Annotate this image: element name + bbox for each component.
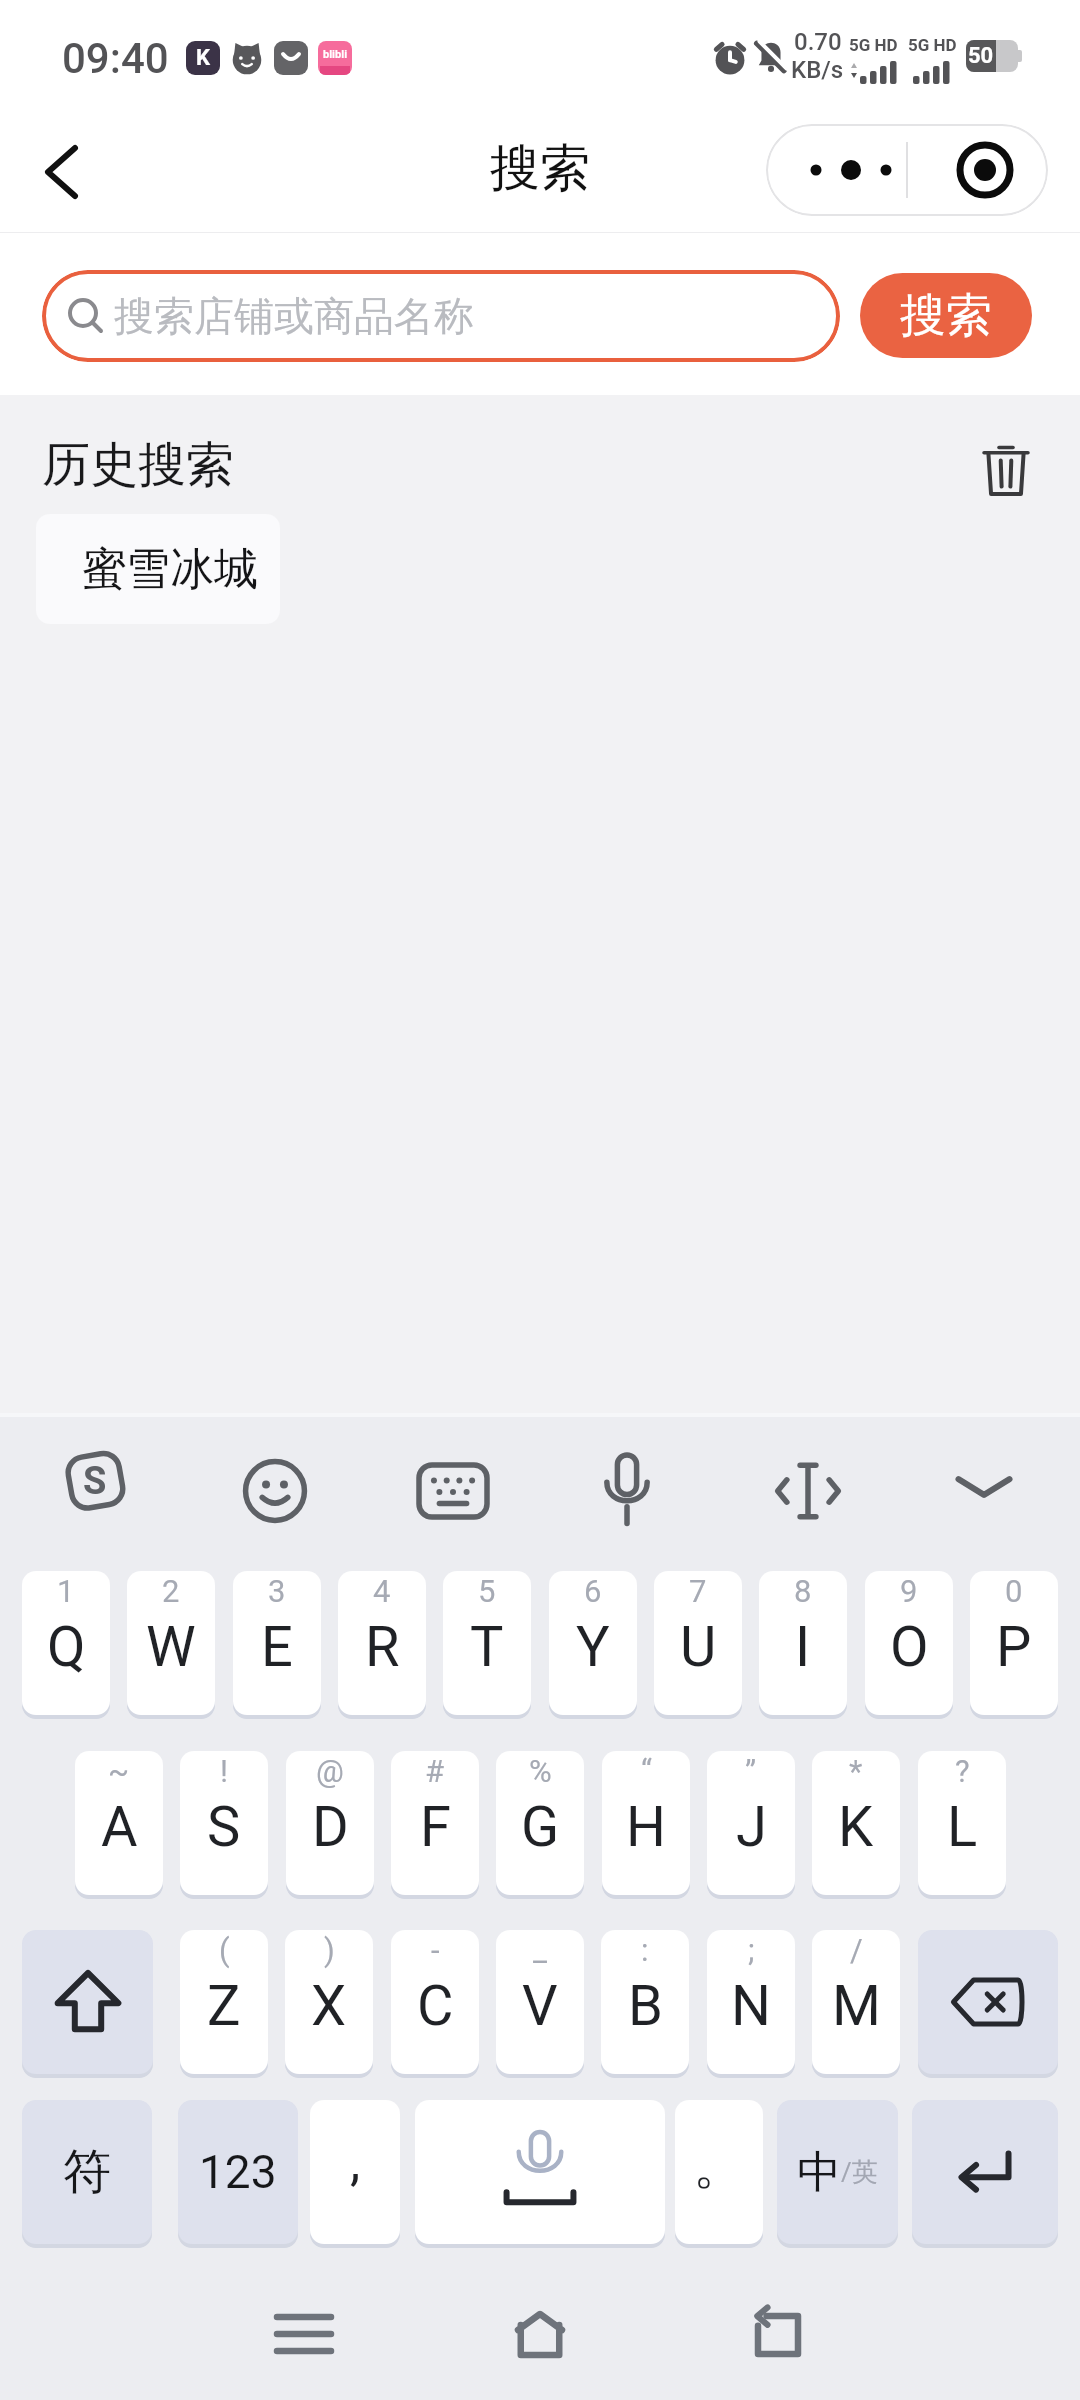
button[interactable] <box>514 2310 566 2360</box>
button[interactable]: 3 <box>233 1571 321 1715</box>
staticText: N <box>731 1973 771 2039</box>
staticText: M <box>832 1973 881 2039</box>
button[interactable] <box>766 124 906 216</box>
button[interactable] <box>918 1930 1058 2074</box>
staticText: Q <box>47 1614 86 1680</box>
button[interactable]: , <box>310 2100 400 2244</box>
button[interactable]: 7 <box>654 1571 742 1715</box>
staticText: 中 <box>797 2145 841 2200</box>
staticText: H <box>626 1794 666 1860</box>
staticText: % <box>529 1753 552 1789</box>
button[interactable] <box>243 1459 307 1523</box>
staticText: B <box>628 1973 663 2039</box>
staticText: W <box>146 1614 196 1680</box>
staticText: 5G HD <box>908 35 957 55</box>
button[interactable]: ; <box>707 1930 795 2074</box>
button[interactable]: 5 <box>443 1571 531 1715</box>
button[interactable] <box>603 1455 651 1527</box>
staticText: blibli <box>323 48 348 61</box>
button[interactable]: 9 <box>865 1571 953 1715</box>
staticText: I <box>795 1614 811 1680</box>
button[interactable]: 。 <box>675 2100 763 2244</box>
button[interactable]: 搜索 <box>860 273 1032 358</box>
button[interactable]: ” <box>707 1751 795 1895</box>
staticText: 2 <box>162 1573 180 1609</box>
button[interactable]: 搜索店铺或商品名称 <box>42 270 840 362</box>
button[interactable]: ~ <box>75 1751 163 1895</box>
button[interactable] <box>908 124 1048 216</box>
staticText: ~ <box>108 1753 130 1789</box>
staticText: ( <box>219 1932 230 1968</box>
staticText: 搜索店铺或商品名称 <box>114 291 474 341</box>
button[interactable]: - <box>391 1930 479 2074</box>
button[interactable]: 8 <box>759 1571 847 1715</box>
button[interactable]: 2 <box>127 1571 215 1715</box>
staticText: D <box>312 1794 349 1860</box>
staticText: ” <box>745 1753 757 1789</box>
button[interactable]: 中 <box>777 2100 898 2244</box>
button[interactable]: S <box>63 1447 129 1513</box>
staticText: ! <box>220 1753 228 1789</box>
staticText: @ <box>316 1753 344 1789</box>
staticText: 1 <box>57 1573 75 1609</box>
staticText: 5G HD <box>849 35 898 55</box>
staticText: /英 <box>841 2156 878 2189</box>
button[interactable]: * <box>812 1751 900 1895</box>
button[interactable]: ) <box>285 1930 373 2074</box>
staticText: K <box>196 45 210 71</box>
staticText: G <box>521 1794 560 1860</box>
button[interactable] <box>22 1930 153 2074</box>
button[interactable]: 6 <box>549 1571 637 1715</box>
staticText: J <box>736 1794 767 1860</box>
staticText: _ <box>533 1932 547 1968</box>
button[interactable]: 0 <box>970 1571 1058 1715</box>
button[interactable] <box>277 2312 331 2358</box>
staticText: P <box>996 1614 1032 1680</box>
button[interactable]: 符 <box>22 2100 152 2244</box>
button[interactable] <box>775 1463 841 1519</box>
button[interactable] <box>955 1475 1013 1509</box>
staticText: U <box>680 1614 717 1680</box>
button[interactable]: ( <box>180 1930 268 2074</box>
button[interactable]: ? <box>918 1751 1006 1895</box>
button[interactable]: 4 <box>338 1571 426 1715</box>
staticText: 123 <box>199 2145 277 2199</box>
button[interactable]: / <box>812 1930 900 2074</box>
button[interactable]: 1 <box>22 1571 110 1715</box>
staticText: 0.70 <box>794 28 842 56</box>
staticText: 3 <box>268 1573 286 1609</box>
button[interactable]: 123 <box>178 2100 298 2244</box>
staticText: 搜索 <box>900 287 992 345</box>
staticText: KB/s <box>791 56 844 84</box>
button[interactable]: # <box>391 1751 479 1895</box>
button[interactable] <box>752 2312 804 2358</box>
staticText: S <box>83 1459 107 1504</box>
staticText: 。 <box>693 2133 745 2199</box>
button[interactable] <box>912 2100 1058 2244</box>
button[interactable] <box>419 1465 487 1517</box>
staticText: Z <box>207 1973 241 2039</box>
button[interactable]: % <box>496 1751 584 1895</box>
button[interactable] <box>415 2100 665 2244</box>
button[interactable] <box>20 120 110 212</box>
staticText: ? <box>955 1753 970 1789</box>
staticText: 符 <box>63 2142 111 2202</box>
button[interactable]: _ <box>496 1930 584 2074</box>
button[interactable]: ! <box>180 1751 268 1895</box>
staticText: 4 <box>373 1573 391 1609</box>
staticText: 0 <box>1005 1573 1023 1609</box>
button[interactable] <box>984 445 1028 497</box>
button[interactable]: “ <box>602 1751 690 1895</box>
staticText: R <box>365 1614 400 1680</box>
staticText: 历史搜索 <box>42 435 234 495</box>
staticText: 搜索 <box>490 137 590 200</box>
staticText: , <box>350 2132 361 2193</box>
button[interactable]: @ <box>286 1751 374 1895</box>
button[interactable]: 蜜雪冰城 <box>36 514 280 624</box>
button[interactable]: : <box>601 1930 689 2074</box>
staticText: A <box>101 1794 138 1860</box>
staticText: / <box>850 1932 863 1968</box>
staticText: E <box>261 1614 293 1680</box>
staticText: : <box>641 1932 649 1968</box>
staticText: ) <box>324 1932 335 1968</box>
